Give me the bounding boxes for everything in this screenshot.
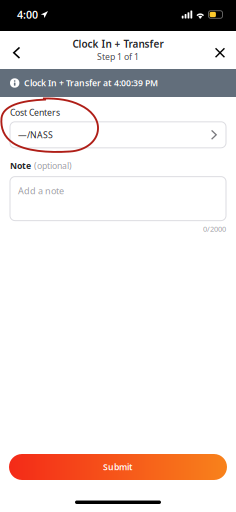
staticText: 4:00 xyxy=(17,7,38,22)
staticText: Add a note xyxy=(18,185,64,197)
staticText: Submit xyxy=(103,461,133,473)
staticText: 0/2000 xyxy=(203,224,226,234)
staticText: Cost Centers xyxy=(10,106,60,118)
staticText: Step 1 of 1 xyxy=(97,51,139,62)
staticText: Note xyxy=(10,160,31,172)
button[interactable]: Close xyxy=(206,38,234,68)
button[interactable]: —/NASS xyxy=(10,122,226,148)
button[interactable]: Back xyxy=(3,38,31,68)
staticText: (optional) xyxy=(34,160,72,172)
staticText: Clock In + Transfer at 4:00:39 PM xyxy=(24,77,158,89)
staticText: Clock In + Transfer xyxy=(72,37,163,51)
staticText: —/NASS xyxy=(18,129,53,141)
button[interactable]: Submit xyxy=(9,454,227,480)
